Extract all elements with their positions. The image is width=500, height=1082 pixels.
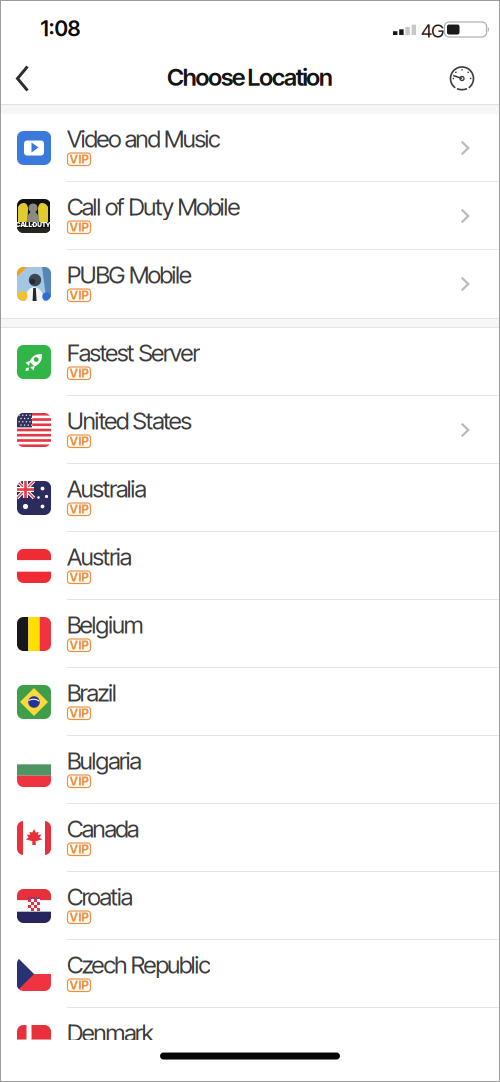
staticText: Croatia (67, 882, 133, 911)
button[interactable]: Video and Music (0, 114, 500, 182)
button[interactable]: Czech Republic (0, 940, 500, 1008)
button[interactable]: CALL·DUTY (0, 182, 500, 250)
button[interactable]: Croatia (0, 872, 500, 940)
staticText: CALL·DUTY (16, 221, 50, 228)
staticText: 4G (421, 20, 444, 42)
button[interactable]: Canada (0, 804, 500, 872)
button[interactable]: Back (0, 48, 41, 104)
button[interactable]: Fastest Server (0, 328, 500, 396)
button[interactable]: Denmark (0, 1008, 500, 1076)
staticText: VIP (69, 288, 88, 302)
staticText: Bulgaria (67, 746, 142, 775)
staticText: VIP (69, 366, 88, 380)
staticText: Fastest Server (67, 338, 200, 367)
staticText: VIP (69, 842, 88, 856)
staticText: VIP (69, 570, 88, 584)
button[interactable]: United States (0, 396, 500, 464)
button[interactable]: Belgium (0, 600, 500, 668)
staticText: Czech Republic (67, 950, 210, 979)
staticText: Austria (67, 542, 132, 571)
staticText: Denmark (67, 1018, 154, 1047)
staticText: VIP (69, 706, 88, 720)
staticText: United States (67, 406, 192, 435)
staticText: VIP (69, 220, 88, 234)
button[interactable]: PUBG Mobile (0, 250, 500, 318)
staticText: Video and Music (67, 124, 220, 153)
button[interactable]: Speed test (441, 57, 483, 99)
staticText: VIP (69, 978, 88, 992)
button[interactable]: Brazil (0, 668, 500, 736)
button[interactable]: Bulgaria (0, 736, 500, 804)
staticText: Choose Location (167, 63, 333, 91)
staticText: Brazil (67, 678, 117, 707)
staticText: VIP (69, 910, 88, 924)
staticText: PUBG Mobile (67, 260, 192, 289)
staticText: Australia (67, 474, 146, 503)
button[interactable]: Australia (0, 464, 500, 532)
staticText: 1:08 (40, 16, 80, 41)
staticText: Canada (67, 814, 139, 843)
button[interactable]: Austria (0, 532, 500, 600)
staticText: VIP (69, 434, 88, 448)
staticText: Call of Duty Mobile (67, 192, 240, 221)
staticText: VIP (69, 502, 88, 516)
staticText: VIP (69, 152, 88, 166)
staticText: VIP (69, 638, 88, 652)
staticText: VIP (69, 774, 88, 788)
staticText: Belgium (67, 610, 144, 639)
